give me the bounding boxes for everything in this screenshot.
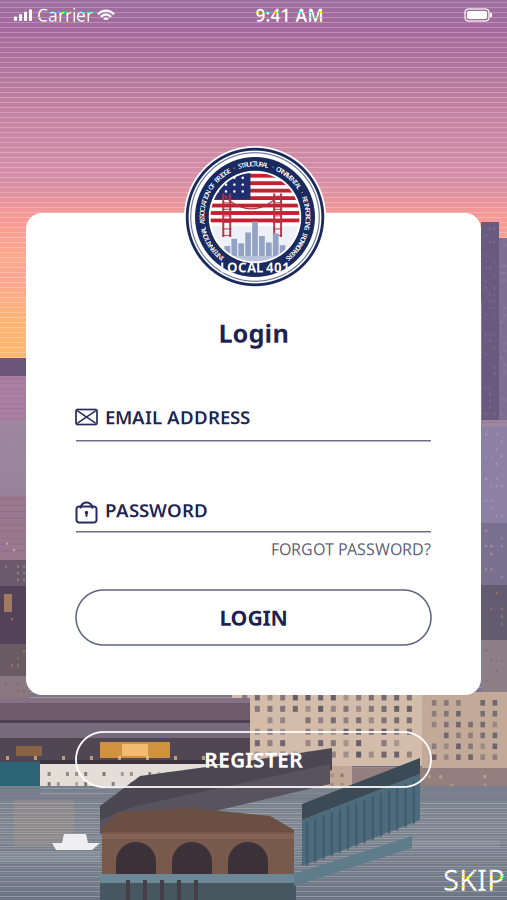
staticText xyxy=(213,178,215,187)
staticText: O xyxy=(208,183,213,192)
staticText: N xyxy=(305,202,310,211)
staticText: A xyxy=(200,218,204,227)
staticText: R xyxy=(259,160,263,169)
staticText: S xyxy=(286,254,290,263)
staticText: T xyxy=(293,178,297,187)
staticText: B xyxy=(215,176,219,185)
staticText: R xyxy=(303,194,307,203)
staticText: E xyxy=(213,248,217,257)
staticText: C xyxy=(200,206,204,214)
staticText: N xyxy=(305,221,310,230)
staticText: I xyxy=(307,218,309,227)
staticText: R xyxy=(302,233,306,241)
staticText: O xyxy=(199,209,204,217)
staticText: O xyxy=(306,209,311,217)
staticText: N xyxy=(281,168,286,177)
staticText: 9:41 AM xyxy=(255,3,323,26)
staticText: E xyxy=(289,173,293,182)
staticText: REGISTER xyxy=(204,745,303,774)
staticText: N xyxy=(217,252,222,261)
staticText: R xyxy=(306,212,310,221)
button[interactable]: SKIP xyxy=(435,852,507,900)
staticText: EMAIL ADDRESS xyxy=(105,405,250,429)
staticText: N xyxy=(202,230,207,239)
staticText: A xyxy=(202,227,206,236)
staticText: LOCAL 401 xyxy=(220,259,290,276)
staticText xyxy=(201,221,203,230)
staticText: I xyxy=(206,235,208,244)
staticText xyxy=(305,227,307,236)
button[interactable]: FORGOT PASSWORD? xyxy=(76,538,431,560)
staticText: R xyxy=(288,252,292,261)
staticText: I xyxy=(202,202,204,211)
staticText: T xyxy=(253,159,257,168)
staticText: SKIP xyxy=(443,860,505,899)
staticText: C xyxy=(306,215,310,224)
staticText xyxy=(208,185,210,194)
staticText: R xyxy=(244,160,248,169)
staticText: M xyxy=(286,171,292,180)
staticText: T xyxy=(215,250,219,259)
staticText: F xyxy=(211,180,215,189)
staticText: G xyxy=(223,168,228,177)
staticText: O xyxy=(204,191,209,200)
staticText: U xyxy=(256,159,261,168)
staticText: I xyxy=(306,200,308,208)
staticText: I xyxy=(304,230,306,239)
staticText: FORGOT PASSWORD? xyxy=(271,538,431,560)
staticText: O xyxy=(296,243,301,252)
staticText: D xyxy=(221,170,226,178)
staticText: T xyxy=(202,197,206,205)
staticText: T xyxy=(206,238,210,247)
staticText: · xyxy=(301,188,303,197)
staticText: I xyxy=(204,194,206,203)
staticText: A xyxy=(208,241,212,250)
staticText: N xyxy=(299,238,304,247)
staticText: · xyxy=(272,162,274,171)
staticText: C xyxy=(250,159,254,168)
staticText: U xyxy=(246,160,251,169)
staticText: R xyxy=(211,246,215,255)
staticText: S xyxy=(200,212,204,221)
staticText: N xyxy=(205,188,210,197)
staticText: E xyxy=(304,197,308,205)
staticText: L xyxy=(297,183,301,192)
staticText: L xyxy=(201,224,205,233)
staticText xyxy=(300,185,302,194)
button[interactable]: LOGIN xyxy=(76,590,431,645)
staticText xyxy=(236,162,238,171)
staticText: K xyxy=(293,248,297,257)
staticText: N xyxy=(209,243,214,252)
staticText: G xyxy=(304,224,309,233)
staticText xyxy=(275,164,277,172)
staticText: E xyxy=(227,166,231,175)
staticText: R xyxy=(295,246,299,255)
staticText: O xyxy=(203,233,208,241)
staticText: Login xyxy=(218,316,288,350)
button[interactable]: REGISTER xyxy=(76,732,431,787)
staticText: R xyxy=(279,166,283,175)
staticText: W xyxy=(297,241,303,250)
staticText: L xyxy=(265,161,269,170)
staticText: LOGIN xyxy=(219,603,287,632)
staticText: S xyxy=(200,215,204,224)
staticText: R xyxy=(217,173,221,182)
staticText xyxy=(303,191,305,200)
staticText: PASSWORD xyxy=(105,498,208,522)
staticText: N xyxy=(291,176,296,185)
staticText: S xyxy=(238,161,242,170)
staticText: I xyxy=(221,254,223,263)
staticText: A xyxy=(295,180,299,189)
staticText: T xyxy=(241,161,245,170)
staticText: A xyxy=(284,170,288,178)
staticText: A xyxy=(201,200,205,208)
staticText: O xyxy=(301,235,306,244)
staticText: O xyxy=(276,165,281,174)
staticText: · xyxy=(233,164,235,172)
staticText: Carrier xyxy=(37,3,93,26)
staticText: A xyxy=(262,160,266,169)
staticText: F xyxy=(306,206,310,214)
staticText: I xyxy=(220,171,222,180)
staticText xyxy=(230,165,232,174)
